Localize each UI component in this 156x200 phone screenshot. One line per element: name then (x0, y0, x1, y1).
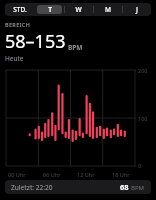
button[interactable]: T (37, 5, 62, 14)
staticText: Zuletzt: 22:20 (11, 183, 53, 192)
button[interactable]: J (124, 5, 149, 14)
staticText: BPM (131, 184, 145, 192)
staticText: J (136, 5, 138, 14)
staticText: BPM (68, 43, 83, 52)
staticText: 00 Uhr (8, 171, 26, 178)
button[interactable]: W (66, 5, 91, 14)
staticText: 58–153 (5, 29, 66, 54)
staticText: T (48, 5, 52, 14)
staticText: M (105, 5, 111, 14)
button[interactable]: Zuletzt: 22:20 (5, 180, 151, 194)
button[interactable]: M (95, 5, 120, 14)
staticText: 12 Uhr (77, 171, 95, 178)
staticText: W (75, 5, 82, 14)
staticText: Heute (5, 54, 24, 63)
staticText: 100 (138, 115, 148, 122)
staticText: 0 (138, 162, 142, 169)
staticText: 18 Uhr (112, 171, 130, 178)
button[interactable]: STD. (7, 5, 33, 14)
staticText: BEREICH (5, 21, 31, 28)
staticText: STD. (13, 5, 27, 14)
staticText: 200 (138, 67, 148, 74)
staticText: 06 Uhr (43, 171, 61, 178)
staticText: 68 (120, 182, 129, 192)
